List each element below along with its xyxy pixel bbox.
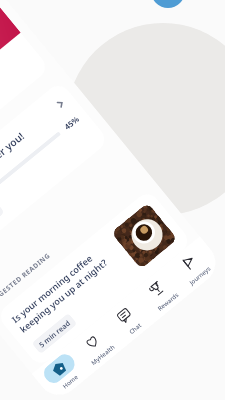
button[interactable]: Chat [104,296,152,344]
button[interactable]: MyHealth [71,322,120,370]
staticText: 45% [62,113,81,132]
button[interactable]: Rewards [136,269,185,317]
staticText: Better mood, better you! [0,101,61,218]
button[interactable]: Better mood, better you! [0,81,110,266]
button[interactable]: Home [39,349,87,397]
staticText: Journeys [187,264,212,287]
button[interactable]: Journeys [169,243,217,290]
button[interactable]: Is your morning coffee keeping you up at… [0,189,192,368]
staticText: Chat [127,321,143,336]
staticText: Home [61,373,80,390]
staticText: SUGGESTED READING [0,251,52,308]
staticText: Rewards [156,290,180,313]
staticText: 5 min read [37,318,72,349]
staticText: MyHealth [89,342,117,367]
button[interactable]: DAILY JOURNEY [0,0,50,194]
staticText: Is your morning coffee keeping you up at… [9,246,110,336]
